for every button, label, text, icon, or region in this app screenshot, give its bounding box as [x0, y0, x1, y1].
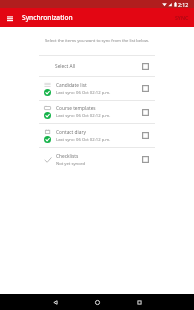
button[interactable]: Contact diary: [39, 124, 155, 147]
staticText: Last sync: 06 Oct 02:12 p.m.: [56, 113, 111, 119]
staticText: Select the items you want to sync from t…: [10, 38, 184, 44]
button[interactable]: Back: [48, 295, 62, 309]
button[interactable]: Checklists: [39, 148, 155, 171]
staticText: Checklists: [56, 153, 79, 160]
button[interactable]: SYNC: [173, 12, 191, 23]
staticText: Candidate list: [56, 82, 87, 89]
button[interactable]: Course templates: [39, 101, 155, 123]
button[interactable]: Select All: [39, 56, 155, 76]
staticText: Last sync: 06 Oct 02:12 p.m.: [56, 137, 111, 143]
staticText: Not yet synced: [56, 161, 86, 167]
staticText: Select All: [55, 63, 76, 70]
staticText: 2:12: [178, 1, 189, 8]
staticText: Synchronization: [22, 13, 73, 22]
button[interactable]: Home: [90, 295, 104, 309]
button[interactable]: Recents: [132, 295, 146, 309]
button[interactable]: Menu: [5, 13, 15, 23]
button[interactable]: Candidate list: [39, 77, 155, 100]
staticText: SYNC: [175, 14, 189, 21]
staticText: Last sync: 06 Oct 02:12 p.m.: [56, 90, 111, 96]
staticText: Course templates: [56, 105, 96, 112]
staticText: Contact diary: [56, 129, 86, 136]
